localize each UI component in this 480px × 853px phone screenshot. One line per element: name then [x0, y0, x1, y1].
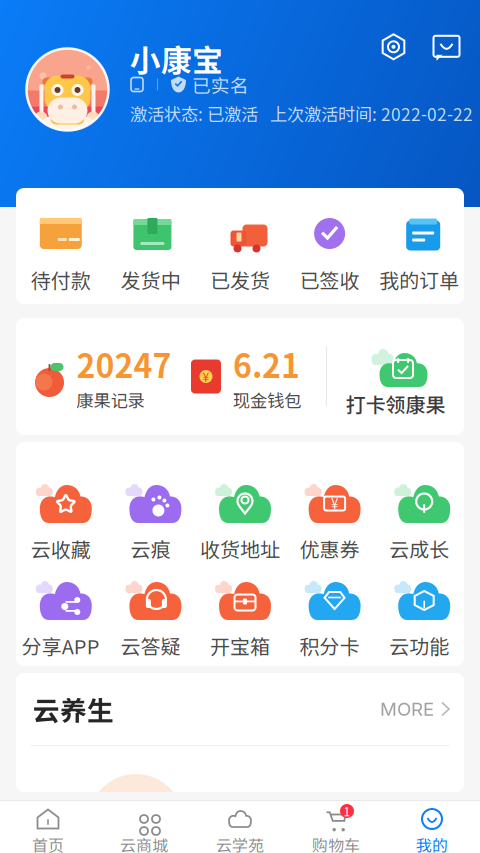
button[interactable]: 打卡领康果: [327, 318, 464, 435]
staticText: 云痕: [130, 534, 170, 563]
button[interactable]: 设置: [380, 33, 407, 60]
button[interactable]: 已发货: [195, 188, 285, 304]
button[interactable]: 积分卡: [285, 539, 374, 636]
staticText: 我的订单: [379, 265, 459, 294]
staticText: 云答疑: [120, 631, 180, 660]
staticText: 康果记录: [76, 387, 144, 412]
staticText: 购物车: [312, 833, 360, 853]
button[interactable]: MORE: [380, 698, 449, 720]
staticText: 云成长: [389, 534, 449, 563]
staticText: 激活状态: 已激活 上次激活时间: 2022-02-22: [130, 101, 473, 126]
staticText: ¥: [202, 368, 209, 385]
button[interactable]: 云答疑: [106, 539, 195, 636]
button[interactable]: 分享APP: [16, 539, 106, 636]
button[interactable]: 1: [288, 801, 384, 853]
staticText: 发货中: [120, 265, 180, 294]
staticText: 云学苑: [216, 833, 264, 853]
button[interactable]: 我的: [384, 801, 480, 853]
staticText: 收货地址: [200, 534, 280, 563]
staticText: ¥: [331, 494, 338, 513]
staticText: 现金钱包: [233, 387, 301, 412]
button[interactable]: 云成长: [374, 442, 464, 539]
button[interactable]: 云痕: [106, 442, 195, 539]
staticText: 已实名: [192, 71, 249, 98]
button[interactable]: ¥: [285, 442, 374, 539]
button[interactable]: 20247: [16, 318, 190, 435]
staticText: 1: [343, 802, 350, 820]
button[interactable]: 发货中: [106, 188, 195, 304]
button[interactable]: 已签收: [285, 188, 374, 304]
staticText: 待付款: [31, 265, 91, 294]
button[interactable]: 云商城: [96, 801, 192, 853]
button[interactable]: 收货地址: [195, 442, 285, 539]
button[interactable]: 我的订单: [374, 188, 464, 304]
staticText: 20247: [76, 341, 171, 387]
staticText: 6.21: [233, 341, 300, 387]
button[interactable]: ¥: [190, 318, 326, 435]
button[interactable]: 消息: [407, 33, 460, 59]
staticText: 首页: [32, 833, 64, 853]
button[interactable]: 开宝箱: [195, 539, 285, 636]
staticText: 打卡领康果: [345, 389, 445, 418]
staticText: 积分卡: [300, 631, 360, 660]
staticText: 云功能: [389, 631, 449, 660]
button[interactable]: 云收藏: [16, 442, 106, 539]
staticText: 云养生: [33, 690, 114, 728]
button[interactable]: 云学苑: [192, 801, 288, 853]
staticText: 我的: [416, 833, 448, 853]
staticText: 云收藏: [31, 534, 91, 563]
staticText: 小康宝: [130, 36, 223, 81]
staticText: 开宝箱: [210, 631, 270, 660]
button[interactable]: 首页: [0, 801, 96, 853]
staticText: 优惠券: [300, 534, 360, 563]
staticText: 云商城: [120, 833, 168, 853]
button[interactable]: 云功能: [374, 539, 464, 636]
staticText: 已签收: [300, 265, 360, 294]
button[interactable]: 待付款: [16, 188, 106, 304]
staticText: 已发货: [210, 265, 270, 294]
staticText: 分享APP: [22, 631, 100, 660]
staticText: MORE: [380, 698, 434, 720]
